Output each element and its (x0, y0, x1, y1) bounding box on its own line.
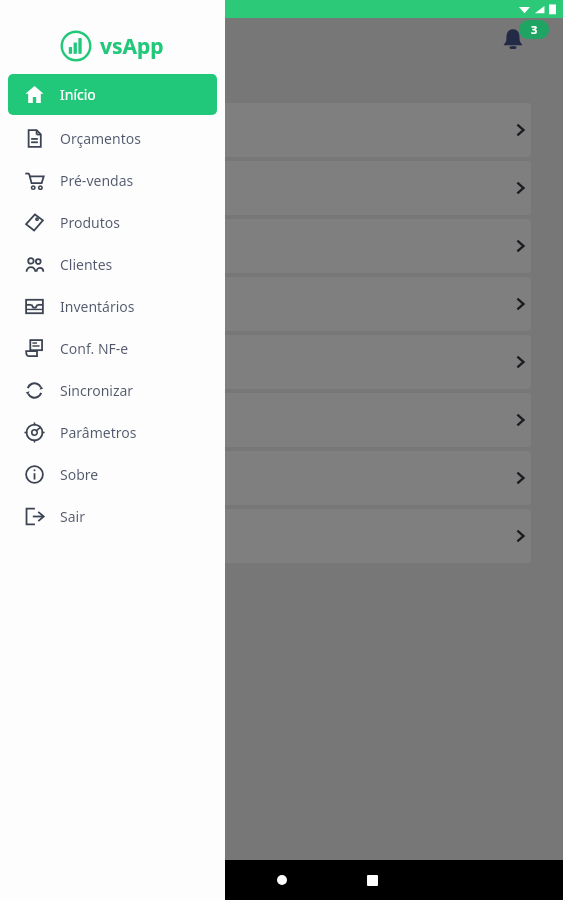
staticText: Orçamentos (60, 129, 141, 148)
button[interactable]: Produtos (0, 201, 225, 243)
staticText: Sobre (60, 465, 99, 484)
button[interactable]: Inventários (0, 285, 225, 327)
button[interactable] (14, 161, 531, 215)
button[interactable]: Sair (0, 495, 225, 537)
button[interactable] (14, 277, 531, 331)
button[interactable] (14, 451, 531, 505)
button[interactable]: Notifications (496, 22, 530, 56)
button[interactable]: Início (8, 74, 217, 115)
staticText: Parâmetros (60, 423, 137, 442)
button[interactable] (14, 335, 531, 389)
staticText: Produtos (60, 213, 120, 232)
button[interactable] (14, 509, 531, 563)
button[interactable] (14, 393, 531, 447)
button[interactable]: Conf. NF-e (0, 327, 225, 369)
button[interactable]: Sincronizar (0, 369, 225, 411)
staticText: Inventários (60, 297, 135, 316)
button[interactable]: Parâmetros (0, 411, 225, 453)
staticText: Sincronizar (60, 381, 134, 400)
button[interactable] (14, 219, 531, 273)
staticText: 3 (531, 22, 538, 37)
staticText: vsApp (100, 32, 164, 61)
button[interactable]: Sobre (0, 453, 225, 495)
staticText: Sair (60, 507, 85, 526)
staticText: Pré-vendas (60, 171, 134, 190)
button[interactable]: Pré-vendas (0, 159, 225, 201)
button[interactable]: Orçamentos (0, 117, 225, 159)
button[interactable]: Clientes (0, 243, 225, 285)
button[interactable]: Home (269, 867, 295, 893)
button[interactable] (14, 103, 531, 157)
button[interactable]: Recents (359, 867, 385, 893)
staticText: Conf. NF-e (60, 339, 129, 358)
staticText: Clientes (60, 255, 113, 274)
staticText: Início (60, 85, 96, 104)
